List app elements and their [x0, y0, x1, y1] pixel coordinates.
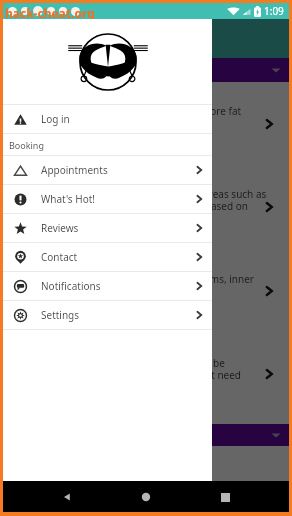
staticText: Notifications	[41, 279, 101, 293]
other: Expand section	[271, 430, 281, 440]
staticText: There are certain areas that are prone t…	[9, 104, 289, 118]
button[interactable]: Notifications	[3, 272, 212, 300]
staticText: 1:09	[264, 4, 284, 18]
button[interactable]	[3, 166, 289, 249]
staticText: What's Hot!	[41, 192, 95, 206]
button[interactable]: What's Hot!	[3, 185, 212, 213]
staticText: Liposuction surgery in other areas can a…	[9, 356, 289, 382]
button[interactable]	[3, 333, 289, 416]
button[interactable]: Contact	[3, 243, 212, 271]
staticText: Log in	[41, 112, 70, 126]
other: Expand section	[271, 65, 281, 75]
staticText: Appointments	[41, 163, 108, 177]
button[interactable]: Appointments	[3, 156, 212, 184]
staticText: Treatment areas include the waist, back,…	[9, 272, 289, 286]
button[interactable]: Expand section	[3, 58, 289, 82]
staticText: hack-cheat.org	[5, 5, 95, 21]
staticText: Contact	[41, 250, 78, 264]
staticText: The liposuction designs have	[9, 473, 145, 487]
button[interactable]: Home	[131, 482, 161, 512]
button[interactable]: Recents	[210, 482, 240, 512]
button[interactable]: Settings	[3, 301, 212, 329]
button[interactable]: Expand section	[3, 424, 289, 446]
button[interactable]: Reviews	[3, 214, 212, 242]
button[interactable]: Back	[52, 482, 82, 512]
staticText: Booking	[9, 139, 44, 151]
button[interactable]: Log in	[3, 105, 212, 133]
staticText: Settings	[41, 308, 80, 322]
staticText: Reviews	[41, 221, 79, 235]
staticText: Liposuction can be performed on several …	[9, 187, 289, 213]
button[interactable]	[3, 83, 289, 166]
button[interactable]	[3, 250, 289, 333]
